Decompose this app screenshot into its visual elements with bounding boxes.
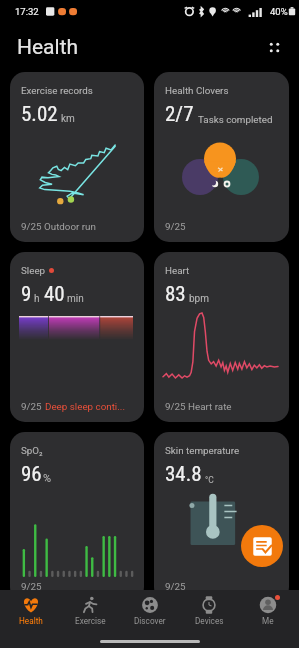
staticText: Tasks completed: [198, 114, 273, 125]
staticText: Exercise records: [21, 85, 93, 96]
button[interactable]: Health: [3, 590, 59, 632]
button[interactable]: Health Clovers: [154, 72, 289, 242]
staticText: 9/25: [21, 581, 42, 592]
staticText: Sleep: [21, 265, 46, 276]
staticText: Me: [262, 616, 274, 626]
staticText: 2/7: [165, 102, 194, 127]
staticText: h: [34, 293, 40, 305]
staticText: °C: [205, 475, 214, 485]
button[interactable]: SpO₂: [10, 432, 144, 602]
staticText: 9/25 Outdoor run: [21, 221, 96, 232]
staticText: 17:32: [15, 6, 39, 17]
button[interactable]: Add health record: [241, 525, 283, 567]
staticText: 9/25: [21, 401, 42, 412]
button[interactable]: Exercise records: [10, 72, 144, 242]
button[interactable]: Discover: [122, 590, 178, 632]
staticText: 40: [44, 282, 65, 307]
staticText: SpO₂: [21, 445, 43, 456]
staticText: min: [67, 293, 84, 305]
button[interactable]: Exercise: [62, 590, 118, 632]
staticText: 9/25 Heart rate: [165, 401, 232, 412]
button[interactable]: Heart: [154, 252, 289, 422]
staticText: Exercise: [75, 616, 106, 626]
staticText: 83: [165, 282, 186, 307]
staticText: 40%: [270, 6, 288, 17]
button[interactable]: Skin temperature: [154, 432, 289, 602]
staticText: Health: [19, 616, 43, 626]
staticText: Discover: [134, 616, 166, 626]
button[interactable]: Devices: [181, 590, 237, 632]
staticText: 9/25: [165, 221, 186, 232]
button[interactable]: More options: [257, 30, 291, 64]
staticText: Devices: [195, 616, 224, 626]
staticText: 9/25: [165, 581, 186, 592]
staticText: Skin temperature: [165, 445, 240, 456]
staticText: Deep sleep conti...: [45, 401, 125, 412]
staticText: 96: [21, 462, 42, 487]
staticText: Health: [17, 35, 79, 60]
staticText: 34.8: [165, 462, 202, 487]
staticText: Heart: [165, 265, 190, 276]
staticText: %: [43, 472, 52, 485]
button[interactable]: Me: [240, 590, 296, 632]
staticText: Health Clovers: [165, 85, 229, 96]
staticText: bpm: [189, 293, 209, 305]
staticText: km: [61, 113, 75, 125]
staticText: 9: [21, 282, 32, 307]
button[interactable]: Sleep: [10, 252, 144, 422]
staticText: 5.02: [21, 102, 58, 127]
